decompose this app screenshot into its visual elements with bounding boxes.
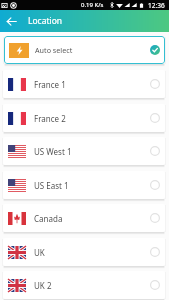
button[interactable]: Canada: [3, 204, 165, 232]
button[interactable]: UK 2: [3, 271, 165, 299]
staticText: Canada: [34, 213, 63, 224]
staticText: UK: [34, 247, 45, 258]
button[interactable]: Back: [0, 10, 22, 32]
button[interactable]: Auto select: [4, 36, 165, 64]
staticText: Location: [28, 15, 63, 27]
staticText: US West 1: [34, 146, 72, 157]
staticText: US East 1: [34, 180, 69, 191]
button[interactable]: France 1: [3, 70, 165, 98]
button[interactable]: France 2: [3, 104, 165, 132]
staticText: Auto select: [35, 45, 73, 55]
staticText: UK 2: [34, 280, 52, 291]
staticText: 12:36: [148, 1, 165, 10]
button[interactable]: US West 1: [3, 137, 165, 165]
button[interactable]: US East 1: [3, 171, 165, 199]
button[interactable]: UK: [3, 238, 165, 266]
staticText: 0.19 K/s: [81, 1, 104, 9]
staticText: France 1: [34, 79, 66, 90]
staticText: France 2: [34, 113, 66, 124]
